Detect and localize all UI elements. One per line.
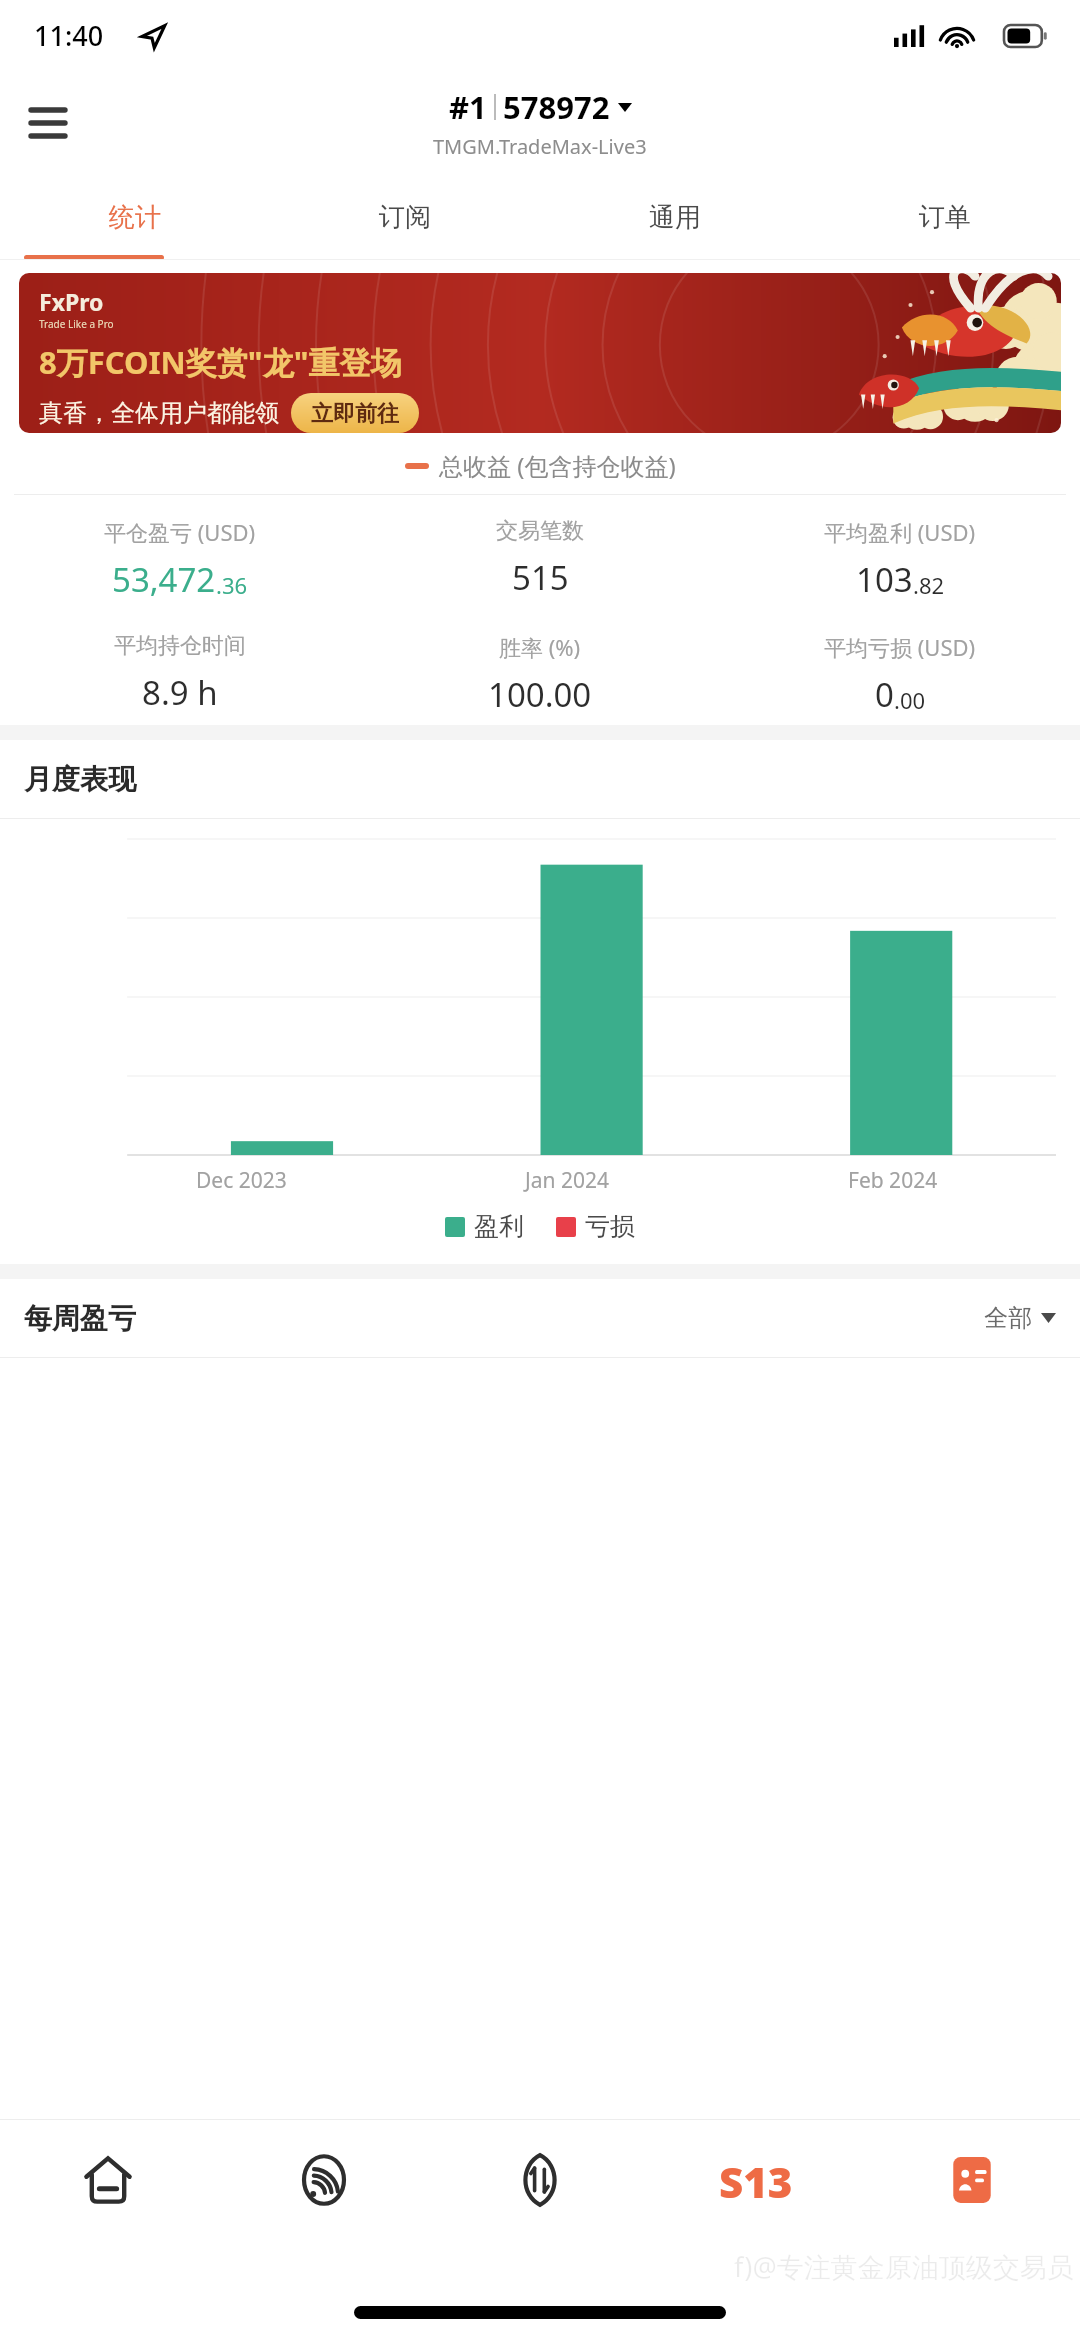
staticText: 订单 [919, 201, 971, 234]
staticText: Jan 2024 [525, 1166, 609, 1195]
staticText: Dec 2023 [196, 1166, 287, 1195]
staticText: 平均盈利 (USD) [824, 517, 976, 547]
staticText: 平仓盈亏 (USD) [104, 517, 256, 547]
button[interactable]: Trade [432, 2120, 648, 2240]
button[interactable]: Menu [20, 95, 76, 151]
staticText: 全部 [984, 1303, 1032, 1333]
staticText: 8.9 h [142, 670, 218, 715]
staticText: 立即前往 [311, 400, 399, 426]
staticText: 交易笔数 [496, 517, 584, 545]
button[interactable]: 月度表现 [0, 740, 1080, 818]
staticText: 订阅 [379, 201, 431, 234]
staticText: 103 [856, 557, 913, 602]
button[interactable]: FxPro [19, 273, 1061, 433]
staticText: 53,472 [112, 557, 216, 602]
staticText: TMGM.TradeMax-Live3 [433, 133, 647, 160]
staticText: 0 [875, 672, 894, 717]
button[interactable]: 统计 [0, 174, 270, 260]
button[interactable]: Profile [864, 2120, 1080, 2240]
staticText: 578972 [503, 86, 610, 128]
button[interactable]: 订阅 [270, 174, 540, 260]
staticText: 盈利 [474, 1211, 524, 1242]
staticText: f)@专注黄金原油顶级交易员 [734, 2248, 1074, 2285]
button[interactable]: #1 [433, 86, 647, 160]
staticText: 亏损 [585, 1211, 635, 1242]
button[interactable]: Signals [216, 2120, 432, 2240]
staticText: .82 [913, 570, 945, 600]
staticText: 515 [512, 555, 569, 600]
staticText: 每周盈亏 [24, 1301, 136, 1336]
staticText: FxPro [39, 286, 104, 317]
staticText: 平均亏损 (USD) [824, 632, 976, 662]
button[interactable]: 立即前往 [311, 400, 399, 426]
staticText: 统计 [109, 201, 161, 234]
staticText: 通用 [649, 201, 701, 234]
staticText: 平均持仓时间 [114, 632, 246, 660]
staticText: 8万FCOIN奖赏"龙"重登场 [39, 341, 402, 383]
button[interactable]: 通用 [540, 174, 810, 260]
staticText: Trade Like a Pro [39, 317, 114, 331]
staticText: 100.00 [488, 672, 592, 717]
button[interactable]: S13 [648, 2120, 864, 2240]
staticText: .36 [216, 570, 248, 600]
staticText: 总收益 (包含持仓收益) [439, 449, 676, 482]
staticText: 胜率 (%) [499, 632, 581, 662]
staticText: 月度表现 [24, 762, 136, 797]
staticText: #1 [449, 86, 487, 128]
staticText: .00 [894, 685, 926, 715]
staticText: Feb 2024 [848, 1166, 938, 1195]
button[interactable]: Home [0, 2120, 216, 2240]
staticText: S13 [719, 2153, 793, 2207]
staticText: 11:40 [34, 17, 104, 54]
staticText: 真香，全体用户都能领 [39, 398, 279, 428]
button[interactable]: 每周盈亏 [0, 1279, 1080, 1357]
button[interactable]: 订单 [810, 174, 1080, 260]
